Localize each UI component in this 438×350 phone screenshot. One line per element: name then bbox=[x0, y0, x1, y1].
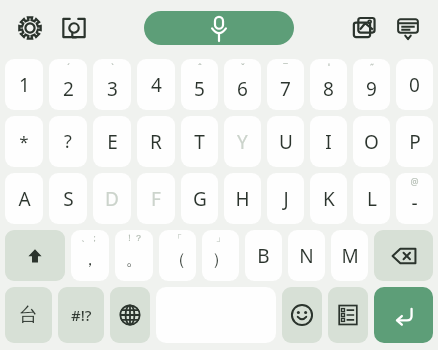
button[interactable]: H bbox=[224, 173, 261, 224]
button[interactable]: E bbox=[93, 116, 131, 167]
staticText: 7 bbox=[280, 76, 291, 102]
staticText: ˈ bbox=[328, 61, 330, 73]
staticText: I bbox=[325, 129, 332, 155]
button[interactable]: ˇ bbox=[224, 59, 261, 110]
staticText: L bbox=[367, 186, 377, 212]
button[interactable]: S bbox=[49, 173, 87, 224]
button[interactable]: Settings bbox=[8, 6, 52, 50]
button[interactable]: ˆ bbox=[181, 59, 218, 110]
staticText: G bbox=[193, 186, 207, 212]
button[interactable]: B bbox=[245, 230, 282, 281]
staticText: - bbox=[411, 190, 418, 216]
button[interactable]: Switch to Chinese bbox=[5, 287, 52, 343]
button[interactable]: ˈ bbox=[310, 59, 347, 110]
staticText: ˝ bbox=[370, 61, 374, 73]
button[interactable]: O bbox=[353, 116, 390, 167]
button[interactable]: F bbox=[137, 173, 175, 224]
staticText: ´ bbox=[67, 61, 70, 73]
button[interactable]: @ bbox=[396, 173, 433, 224]
button[interactable]: Enter bbox=[374, 287, 433, 343]
staticText: 1 bbox=[19, 72, 30, 98]
staticText: E bbox=[107, 129, 118, 155]
button[interactable]: Change language bbox=[110, 287, 150, 343]
staticText: D bbox=[105, 186, 119, 212]
button[interactable]: Y bbox=[224, 116, 261, 167]
staticText: ） bbox=[212, 249, 229, 270]
staticText: B bbox=[257, 243, 270, 269]
button[interactable]: L bbox=[353, 173, 390, 224]
staticText: 0 bbox=[409, 72, 420, 98]
staticText: 8 bbox=[323, 76, 334, 102]
staticText: ? bbox=[64, 129, 72, 154]
button[interactable]: Clipboard bbox=[328, 287, 368, 343]
button[interactable]: K bbox=[310, 173, 347, 224]
button[interactable]: Voice input bbox=[144, 11, 294, 45]
button[interactable]: 4 bbox=[137, 59, 175, 110]
staticText: J bbox=[283, 186, 289, 212]
staticText: 」 bbox=[216, 232, 225, 243]
staticText: 「 bbox=[173, 232, 182, 243]
button[interactable]: Camera translate bbox=[52, 6, 96, 50]
staticText: 。 bbox=[126, 250, 142, 270]
button[interactable]: I bbox=[310, 116, 347, 167]
staticText: K bbox=[323, 186, 335, 212]
button[interactable]: N bbox=[288, 230, 325, 281]
staticText: ， bbox=[82, 250, 98, 270]
button[interactable]: M bbox=[331, 230, 368, 281]
staticText: @ bbox=[410, 175, 419, 187]
staticText: O bbox=[364, 129, 379, 155]
staticText: N bbox=[299, 243, 314, 269]
button[interactable]: T bbox=[181, 116, 218, 167]
staticText: ！？ bbox=[125, 232, 143, 243]
button[interactable]: Stickers and images bbox=[342, 6, 386, 50]
button[interactable]: 、； bbox=[71, 230, 109, 281]
button[interactable]: ´ bbox=[49, 59, 87, 110]
staticText: T bbox=[194, 129, 205, 155]
button[interactable]: 」 bbox=[202, 230, 239, 281]
button[interactable]: More options bbox=[386, 6, 430, 50]
button[interactable]: A bbox=[5, 173, 43, 224]
button[interactable]: ！？ bbox=[115, 230, 153, 281]
staticText: 2 bbox=[63, 76, 74, 102]
button[interactable]: ˝ bbox=[353, 59, 390, 110]
staticText: A bbox=[18, 186, 31, 212]
button[interactable]: Symbols bbox=[58, 287, 104, 343]
staticText: S bbox=[63, 186, 74, 212]
button[interactable]: D bbox=[93, 173, 131, 224]
button[interactable]: R bbox=[137, 116, 175, 167]
staticText: Y bbox=[237, 129, 248, 155]
button[interactable]: Backspace bbox=[374, 230, 433, 281]
staticText: P bbox=[409, 129, 421, 155]
button[interactable]: ? bbox=[49, 116, 87, 167]
staticText: F bbox=[151, 186, 161, 212]
staticText: ˇ bbox=[241, 61, 245, 73]
staticText: 6 bbox=[237, 76, 248, 102]
button[interactable]: 「 bbox=[159, 230, 196, 281]
button[interactable]: ¯ bbox=[267, 59, 304, 110]
staticText: 台 bbox=[19, 303, 38, 327]
staticText: M bbox=[341, 243, 359, 269]
button[interactable]: * bbox=[5, 116, 43, 167]
button[interactable]: G bbox=[181, 173, 218, 224]
staticText: H bbox=[235, 186, 250, 212]
button[interactable]: 0 bbox=[396, 59, 433, 110]
button[interactable]: P bbox=[396, 116, 433, 167]
staticText: ¯ bbox=[283, 61, 288, 73]
button[interactable]: U bbox=[267, 116, 304, 167]
button[interactable]: Shift bbox=[5, 230, 65, 281]
staticText: ` bbox=[111, 61, 114, 73]
staticText: * bbox=[19, 130, 29, 153]
staticText: 5 bbox=[194, 76, 205, 102]
button[interactable]: J bbox=[267, 173, 304, 224]
staticText: #!? bbox=[71, 305, 92, 325]
staticText: 4 bbox=[151, 72, 162, 98]
staticText: U bbox=[279, 129, 293, 155]
button[interactable]: ` bbox=[93, 59, 131, 110]
staticText: （ bbox=[169, 249, 186, 270]
staticText: 9 bbox=[366, 76, 377, 102]
staticText: R bbox=[150, 129, 162, 155]
staticText: 3 bbox=[107, 76, 118, 102]
button[interactable]: Emoji bbox=[282, 287, 322, 343]
button[interactable]: 1 bbox=[5, 59, 43, 110]
